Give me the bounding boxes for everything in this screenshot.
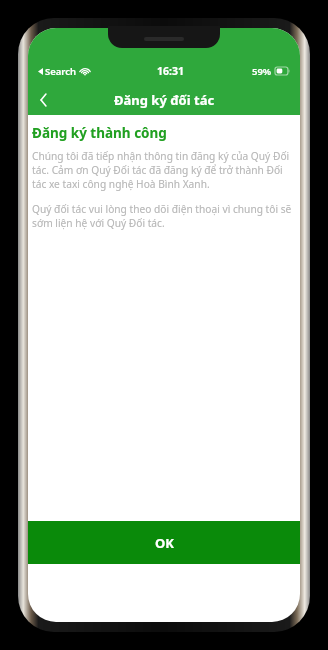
button[interactable]: OK (28, 521, 300, 564)
button[interactable]: Back (28, 85, 58, 115)
staticText: Search (45, 65, 77, 78)
staticText: 16:31 (157, 64, 184, 78)
staticText: Đăng ký đối tác (114, 91, 215, 109)
staticText: Đăng ký thành công (32, 124, 167, 142)
staticText: 59% (252, 65, 272, 78)
staticText: Quý đối tác vui lòng theo dõi điện thoại… (32, 202, 292, 230)
staticText: Chúng tôi đã tiếp nhận thông tin đăng ký… (32, 149, 292, 191)
staticText: OK (155, 534, 174, 552)
